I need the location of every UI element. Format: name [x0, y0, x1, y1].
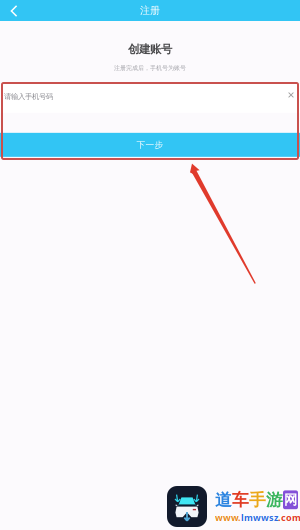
staticText: 请输入手机号码: [4, 92, 53, 101]
staticText: 车: [232, 489, 249, 510]
staticText: 道: [215, 489, 232, 510]
staticText: lmwwsz: [241, 511, 278, 524]
staticText: 网: [284, 491, 297, 508]
staticText: 手: [249, 489, 266, 510]
staticText: .com: [278, 511, 300, 524]
staticText: 注册: [140, 4, 160, 17]
staticText: 创建账号: [128, 42, 172, 56]
staticText: www.: [215, 511, 241, 524]
staticText: 下一步: [136, 139, 163, 150]
staticText: 注册完成后，手机号为账号: [114, 64, 186, 72]
button[interactable]: Back: [0, 0, 24, 21]
button[interactable]: Clear: [290, 93, 296, 99]
staticText: 游: [266, 489, 283, 510]
button[interactable]: 下一步: [0, 133, 300, 157]
